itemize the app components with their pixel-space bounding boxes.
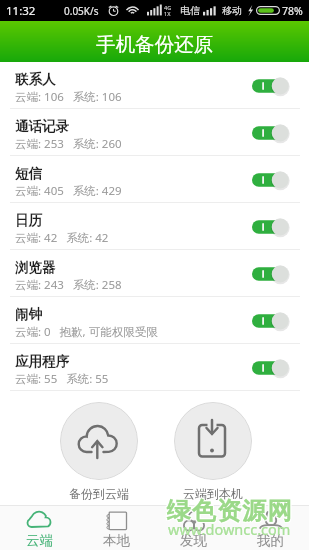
button[interactable]: 日历 [0, 203, 309, 250]
staticText: 浏览器 [15, 259, 56, 276]
staticText: 联系人 [15, 71, 56, 88]
button[interactable]: 切换 [252, 75, 290, 97]
button[interactable]: 短信 [0, 156, 309, 203]
staticText: 绿色资源网 [167, 496, 293, 526]
staticText: 手机备份还原 [96, 32, 213, 57]
button[interactable]: 浏览器 [0, 250, 309, 297]
staticText: 移动 [222, 4, 242, 17]
button[interactable]: 切换 [252, 263, 290, 285]
staticText: 11:32 [6, 3, 36, 19]
staticText: 备份到云端 [69, 486, 129, 501]
staticText: 云端: 243 系统: 258 [15, 277, 122, 293]
staticText: 绿色资源网 [166, 497, 292, 527]
staticText: 绿色资源网 [166, 496, 292, 526]
staticText: 云端: 0 抱歉, 可能权限受限 [15, 324, 158, 340]
staticText: 我的 [257, 532, 284, 549]
button[interactable]: 本地 [78, 506, 155, 550]
button[interactable]: 发现 [155, 506, 232, 550]
button[interactable]: 切换 [252, 357, 290, 379]
staticText: 云端: 253 系统: 260 [15, 136, 122, 152]
button[interactable]: 云端 [0, 506, 78, 550]
staticText: 短信 [15, 165, 42, 182]
button[interactable]: 切换 [252, 169, 290, 191]
button[interactable]: 联系人 [0, 62, 309, 109]
staticText: 通话记录 [15, 118, 69, 135]
staticText: 绿色资源网 [166, 495, 292, 525]
staticText: 0.05K/s [64, 4, 99, 18]
staticText: 绿色资源网 [165, 495, 291, 525]
staticText: 云端: 405 系统: 429 [15, 183, 122, 199]
staticText: 云端到本机 [183, 486, 243, 501]
staticText: 绿色资源网 [167, 497, 293, 527]
button[interactable]: 切换 [252, 310, 290, 332]
staticText: 4G 1X [164, 4, 172, 17]
button[interactable]: 通话记录 [0, 109, 309, 156]
staticText: 绿色资源网 [165, 497, 291, 527]
staticText: 绿色资源网 [165, 496, 291, 526]
staticText: 云端: 106 系统: 106 [15, 89, 122, 105]
staticText: 本地 [103, 532, 130, 549]
button[interactable]: 闹钟 [0, 297, 309, 344]
button[interactable]: 应用程序 [0, 344, 309, 391]
staticText: 电信 [180, 4, 200, 17]
staticText: 应用程序 [15, 353, 69, 370]
button[interactable]: 云端到本机 [174, 402, 252, 501]
staticText: 闹钟 [15, 306, 42, 323]
button[interactable]: 切换 [252, 122, 290, 144]
staticText: 云端: 55 系统: 55 [15, 371, 109, 387]
staticText: 78% [282, 4, 303, 18]
button[interactable]: 切换 [252, 216, 290, 238]
staticText: 日历 [15, 212, 42, 229]
staticText: 云端 [26, 532, 53, 549]
button[interactable]: 备份到云端 [60, 402, 138, 501]
staticText: 发现 [180, 532, 207, 549]
staticText: www.downcc.com [168, 519, 291, 539]
button[interactable]: 我的 [232, 506, 309, 550]
staticText: 绿色资源网 [167, 495, 293, 525]
staticText: 云端: 42 系统: 42 [15, 230, 109, 246]
